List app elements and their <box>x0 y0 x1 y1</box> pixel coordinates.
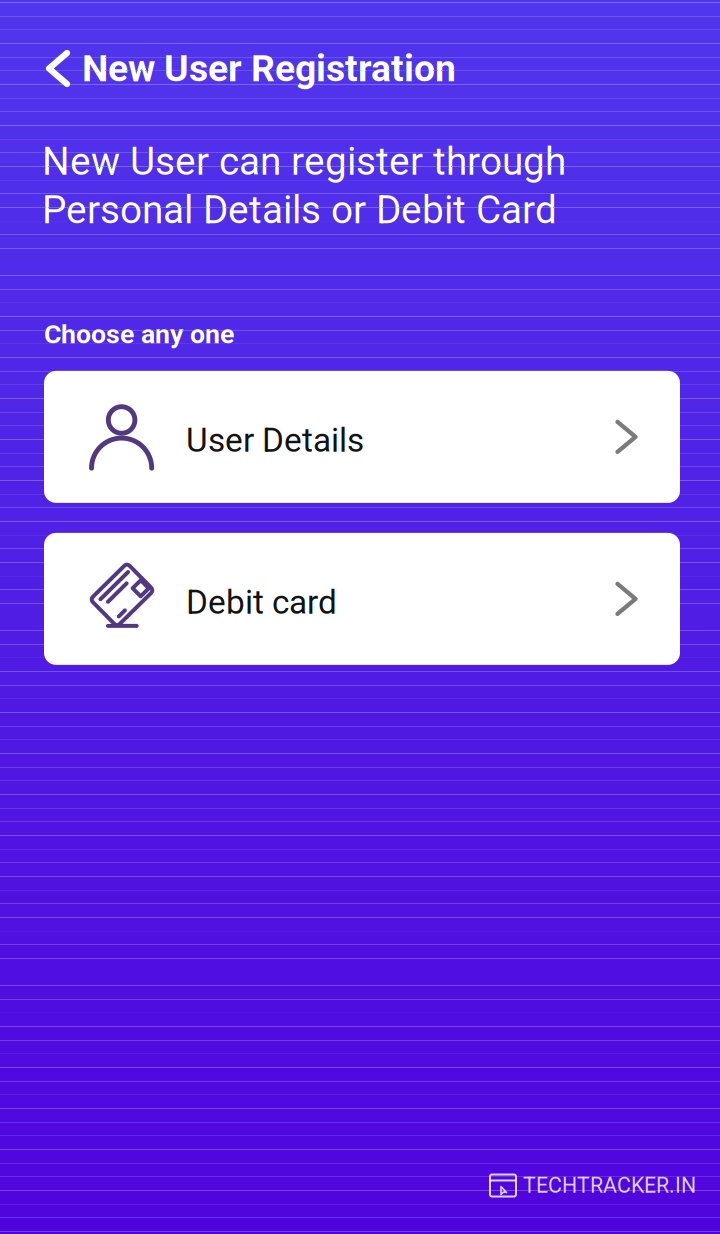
staticText: New User can register through <box>42 139 566 184</box>
button[interactable]: User Details <box>44 371 680 503</box>
staticText: New User Registration <box>82 47 456 90</box>
staticText: TECHTRACKER.IN <box>523 1173 696 1198</box>
button[interactable]: Back <box>0 42 82 95</box>
staticText: Personal Details or Debit Card <box>42 187 557 233</box>
staticText: User Details <box>186 421 364 460</box>
button[interactable]: Debit card <box>44 533 680 665</box>
staticText: Debit card <box>186 583 337 622</box>
staticText: Choose any one <box>44 319 234 350</box>
